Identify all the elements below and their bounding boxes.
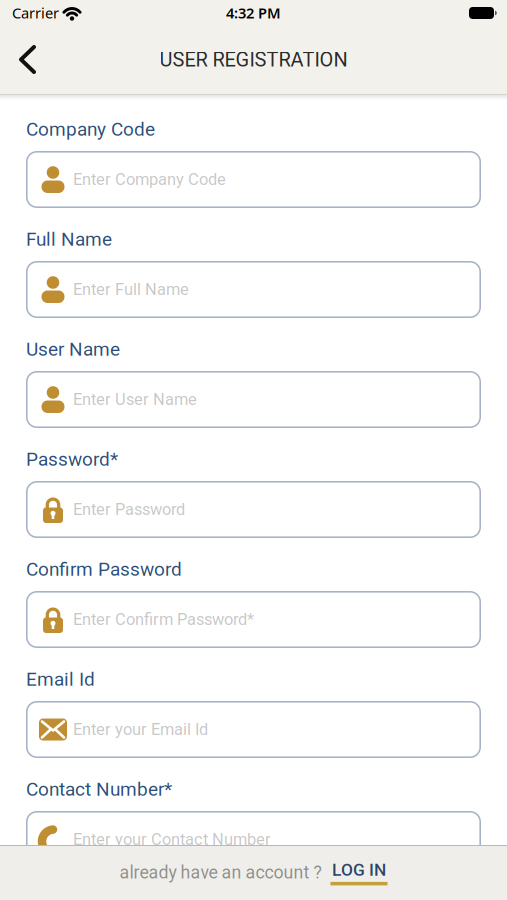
staticText: Email Id (26, 668, 95, 690)
button[interactable]: Enter User Name (26, 371, 481, 428)
staticText: Company Code (26, 118, 155, 140)
button[interactable]: Enter Company Code (26, 151, 481, 208)
staticText: 4:32 PM (226, 3, 281, 22)
staticText: Enter Password (73, 500, 185, 519)
staticText: Enter your Email Id (73, 720, 208, 739)
staticText: Confirm Password (26, 558, 182, 580)
staticText: Full Name (26, 228, 112, 250)
staticText: Enter Company Code (73, 170, 226, 189)
staticText: USER REGISTRATION (159, 48, 347, 71)
button[interactable]: Enter your Email Id (26, 701, 481, 758)
staticText: User Name (26, 338, 120, 360)
button[interactable]: Back (8, 40, 48, 80)
button[interactable]: LOG IN (330, 860, 387, 885)
staticText: already have an account ? (119, 862, 321, 883)
button[interactable]: Enter your Contact Number (26, 811, 481, 868)
button[interactable]: Enter Full Name (26, 261, 481, 318)
staticText: Password* (26, 448, 118, 470)
button[interactable]: Enter Password (26, 481, 481, 538)
staticText: Enter your Contact Number (73, 830, 271, 849)
staticText: Carrier (12, 3, 59, 22)
staticText: Enter User Name (73, 390, 197, 409)
staticText: Contact Number* (26, 778, 172, 800)
staticText: LOG IN (332, 860, 386, 880)
button[interactable]: Enter Confirm Password* (26, 591, 481, 648)
staticText: Enter Full Name (73, 280, 189, 299)
staticText: Enter Confirm Password* (73, 610, 254, 629)
